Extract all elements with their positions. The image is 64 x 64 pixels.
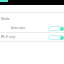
button[interactable]: Wi-Fi only (0, 33, 64, 41)
button[interactable]: Auto sync (0, 24, 64, 32)
staticText: Auto sync (11, 26, 26, 30)
staticText: Wi-Fi only (1, 35, 16, 39)
button[interactable]: Toggle setting (48, 35, 64, 40)
button[interactable]: Toggle setting (48, 26, 64, 31)
staticText: Mode (1, 17, 10, 21)
